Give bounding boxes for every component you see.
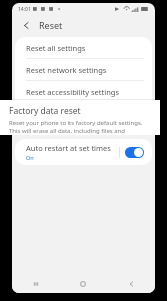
button[interactable]: Recents xyxy=(12,275,59,293)
staticText: Auto restart at set times xyxy=(26,143,111,153)
button[interactable]: Back xyxy=(18,17,34,33)
button[interactable]: Reset accessibility settings xyxy=(15,81,152,102)
staticText: Reset your phone to its factory default … xyxy=(9,119,154,135)
staticText: Reset xyxy=(39,19,63,31)
staticText: Reset accessibility settings xyxy=(26,87,120,97)
button[interactable]: Home xyxy=(59,275,107,293)
button[interactable]: Reset network settings xyxy=(15,59,152,80)
staticText: Reset network settings xyxy=(26,65,107,75)
staticText: Reset all settings xyxy=(26,43,86,53)
button[interactable]: Auto restart at set times xyxy=(15,139,152,165)
button[interactable]: Reset all settings xyxy=(15,37,152,58)
button[interactable]: Factory data reset xyxy=(0,100,160,135)
button[interactable]: Back xyxy=(107,275,155,293)
staticText: On xyxy=(26,154,34,161)
staticText: Factory data reset xyxy=(9,105,81,117)
staticText: 14:01 xyxy=(18,6,31,13)
button[interactable]: Auto restart toggle, on xyxy=(125,147,144,158)
